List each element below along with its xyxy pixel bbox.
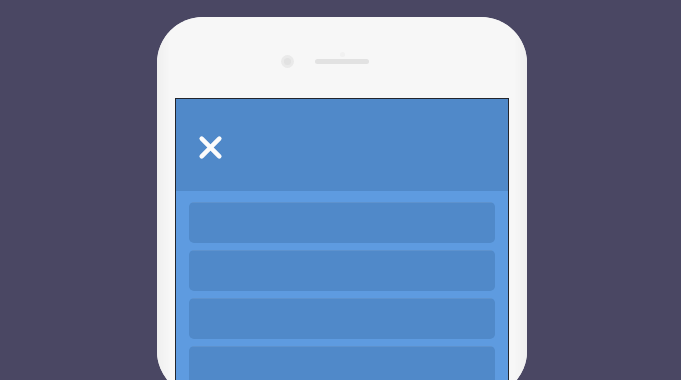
button[interactable]: Close bbox=[190, 127, 230, 167]
